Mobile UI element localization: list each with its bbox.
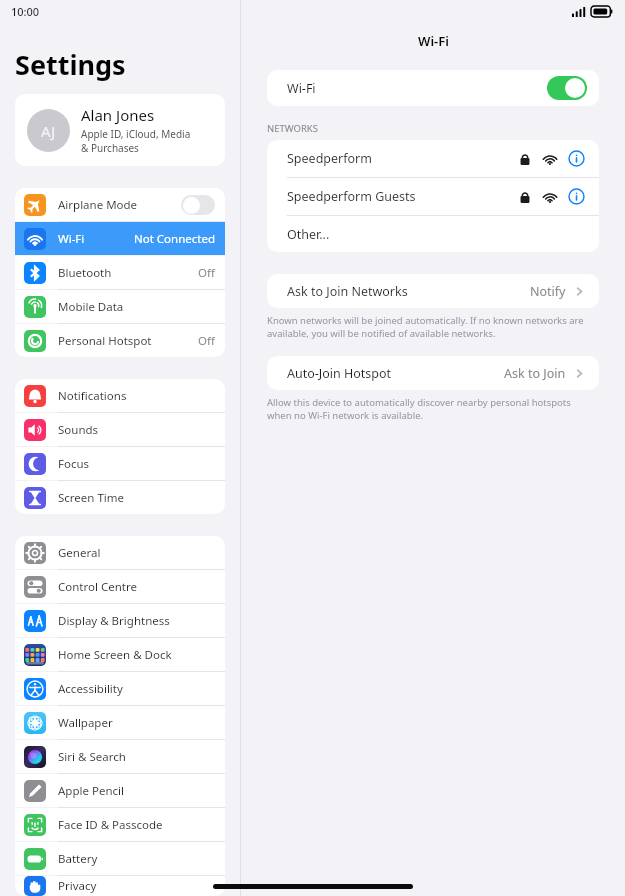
staticText: Settings xyxy=(15,46,126,83)
staticText: Accessibility xyxy=(58,681,123,697)
button[interactable]: Auto-Join Hotspot xyxy=(267,356,599,390)
button[interactable]: Other... xyxy=(267,216,599,252)
button[interactable]: Sounds xyxy=(15,413,225,446)
button[interactable]: Battery xyxy=(15,842,225,875)
button[interactable]: Siri & Search xyxy=(15,740,225,773)
staticText: AJ xyxy=(41,121,56,141)
staticText: Alan Jones xyxy=(81,105,155,125)
button[interactable]: Accessibility xyxy=(15,672,225,705)
button[interactable]: Wi-Fi on/off xyxy=(547,76,587,100)
staticText: & Purchases xyxy=(81,141,139,155)
button[interactable]: Airplane Mode xyxy=(15,188,225,221)
button[interactable]: Ask to Join Networks xyxy=(267,274,599,308)
button[interactable]: Privacy xyxy=(15,876,225,896)
staticText: Notify xyxy=(530,283,566,300)
staticText: Bluetooth xyxy=(58,265,112,281)
button[interactable]: Bluetooth xyxy=(15,256,225,289)
staticText: Wi-Fi xyxy=(418,32,449,50)
staticText: Not Connected xyxy=(134,231,215,247)
staticText: Home Screen & Dock xyxy=(58,647,172,663)
button[interactable]: Display & Brightness xyxy=(15,604,225,637)
staticText: 10:00 xyxy=(11,4,40,19)
staticText: Off xyxy=(198,265,215,281)
button[interactable]: AJ xyxy=(15,94,225,166)
staticText: Wi-Fi xyxy=(287,80,316,97)
button[interactable]: Mobile Data xyxy=(15,290,225,323)
staticText: Siri & Search xyxy=(58,749,126,765)
staticText: Display & Brightness xyxy=(58,613,170,629)
button[interactable]: Screen Time xyxy=(15,481,225,514)
button[interactable]: Home Screen & Dock xyxy=(15,638,225,671)
staticText: Ask to Join xyxy=(504,365,566,382)
staticText: Other... xyxy=(287,226,330,243)
button[interactable]: General xyxy=(15,536,225,569)
staticText: Apple ID, iCloud, Media xyxy=(81,127,191,141)
staticText: Focus xyxy=(58,456,90,472)
staticText: NETWORKS xyxy=(267,122,318,135)
button[interactable]: Face ID & Passcode xyxy=(15,808,225,841)
button[interactable]: Speedperform Guests xyxy=(267,178,599,215)
staticText: Off xyxy=(198,333,215,349)
staticText: Known networks will be joined automatica… xyxy=(267,314,584,340)
staticText: Apple Pencil xyxy=(58,783,124,799)
staticText: Mobile Data xyxy=(58,299,124,315)
staticText: Privacy xyxy=(58,878,97,894)
button[interactable]: Airplane Mode toggle xyxy=(181,195,215,215)
staticText: Personal Hotspot xyxy=(58,333,152,349)
staticText: Notifications xyxy=(58,388,127,404)
button[interactable]: Wi-Fi xyxy=(267,70,599,106)
staticText: General xyxy=(58,545,101,561)
button[interactable]: Apple Pencil xyxy=(15,774,225,807)
staticText: Face ID & Passcode xyxy=(58,817,163,833)
staticText: Sounds xyxy=(58,422,99,438)
staticText: Ask to Join Networks xyxy=(287,283,408,300)
button[interactable]: Speedperform xyxy=(267,140,599,177)
button[interactable]: Control Centre xyxy=(15,570,225,603)
staticText: Wi-Fi xyxy=(58,231,85,247)
staticText: Control Centre xyxy=(58,579,137,595)
staticText: Allow this device to automatically disco… xyxy=(267,396,571,422)
button[interactable]: More info about Speedperform xyxy=(568,150,585,167)
staticText: Auto-Join Hotspot xyxy=(287,365,392,382)
button[interactable]: Personal Hotspot xyxy=(15,324,225,357)
staticText: Airplane Mode xyxy=(58,197,138,213)
staticText: Speedperform xyxy=(287,150,372,167)
button[interactable]: More info about Speedperform Guests xyxy=(568,188,585,205)
button[interactable]: Wi-Fi xyxy=(15,222,225,255)
staticText: Screen Time xyxy=(58,490,125,506)
staticText: Wallpaper xyxy=(58,715,113,731)
button[interactable]: Wallpaper xyxy=(15,706,225,739)
staticText: Speedperform Guests xyxy=(287,188,416,205)
button[interactable]: Focus xyxy=(15,447,225,480)
staticText: Battery xyxy=(58,851,98,867)
button[interactable]: Notifications xyxy=(15,379,225,412)
